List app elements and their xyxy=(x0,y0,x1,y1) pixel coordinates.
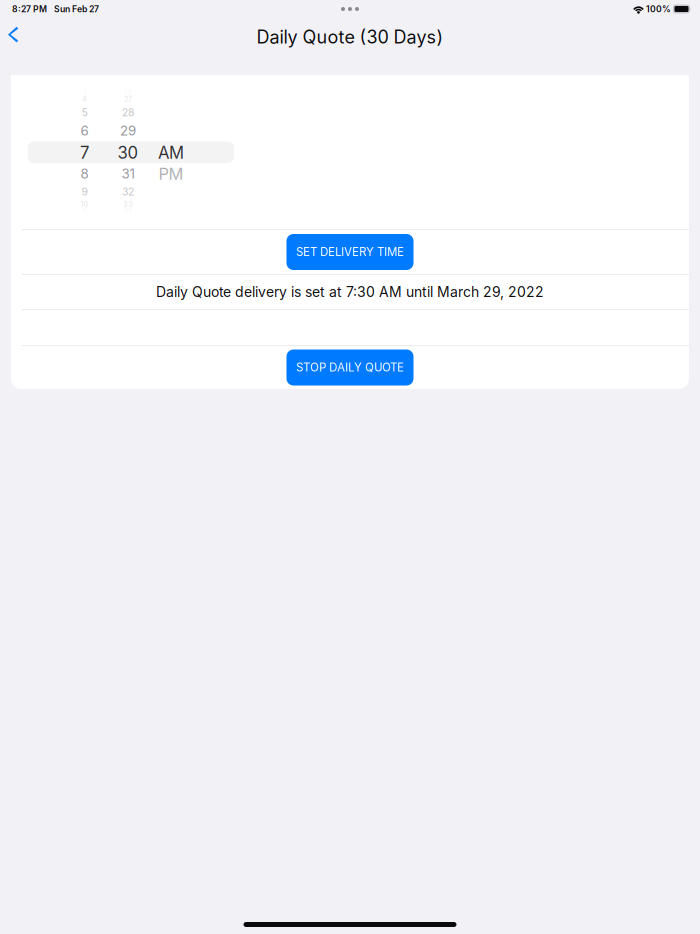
staticText: Sun Feb 27 xyxy=(54,4,99,14)
staticText: AM xyxy=(158,142,184,163)
staticText: 33 xyxy=(123,200,133,208)
button[interactable]: Back xyxy=(0,18,33,56)
staticText: 27 xyxy=(124,95,132,104)
staticText: 31 xyxy=(121,166,134,182)
button[interactable]: SET DELIVERY TIME xyxy=(286,234,413,270)
staticText: 8 xyxy=(80,166,88,182)
staticText: Daily Quote delivery is set at 7:30 AM u… xyxy=(156,283,544,300)
staticText: 29 xyxy=(120,123,136,139)
staticText: 32 xyxy=(122,185,134,198)
staticText: Daily Quote (30 Days) xyxy=(256,26,443,48)
staticText: SET DELIVERY TIME xyxy=(296,245,404,259)
staticText: 9 xyxy=(81,185,87,198)
staticText: 6 xyxy=(80,123,88,139)
staticText: 5 xyxy=(81,106,87,119)
button[interactable]: STOP DAILY QUOTE xyxy=(286,349,413,385)
staticText: 28 xyxy=(122,106,134,119)
staticText: 30 xyxy=(117,142,138,163)
staticText: 7 xyxy=(80,142,89,163)
staticText: PM xyxy=(158,164,183,184)
staticText: 10 xyxy=(80,200,88,208)
staticText: 4 xyxy=(82,95,87,104)
staticText: 8:27 PM xyxy=(12,4,47,14)
staticText: 100% xyxy=(646,4,671,14)
staticText: STOP DAILY QUOTE xyxy=(296,361,404,374)
